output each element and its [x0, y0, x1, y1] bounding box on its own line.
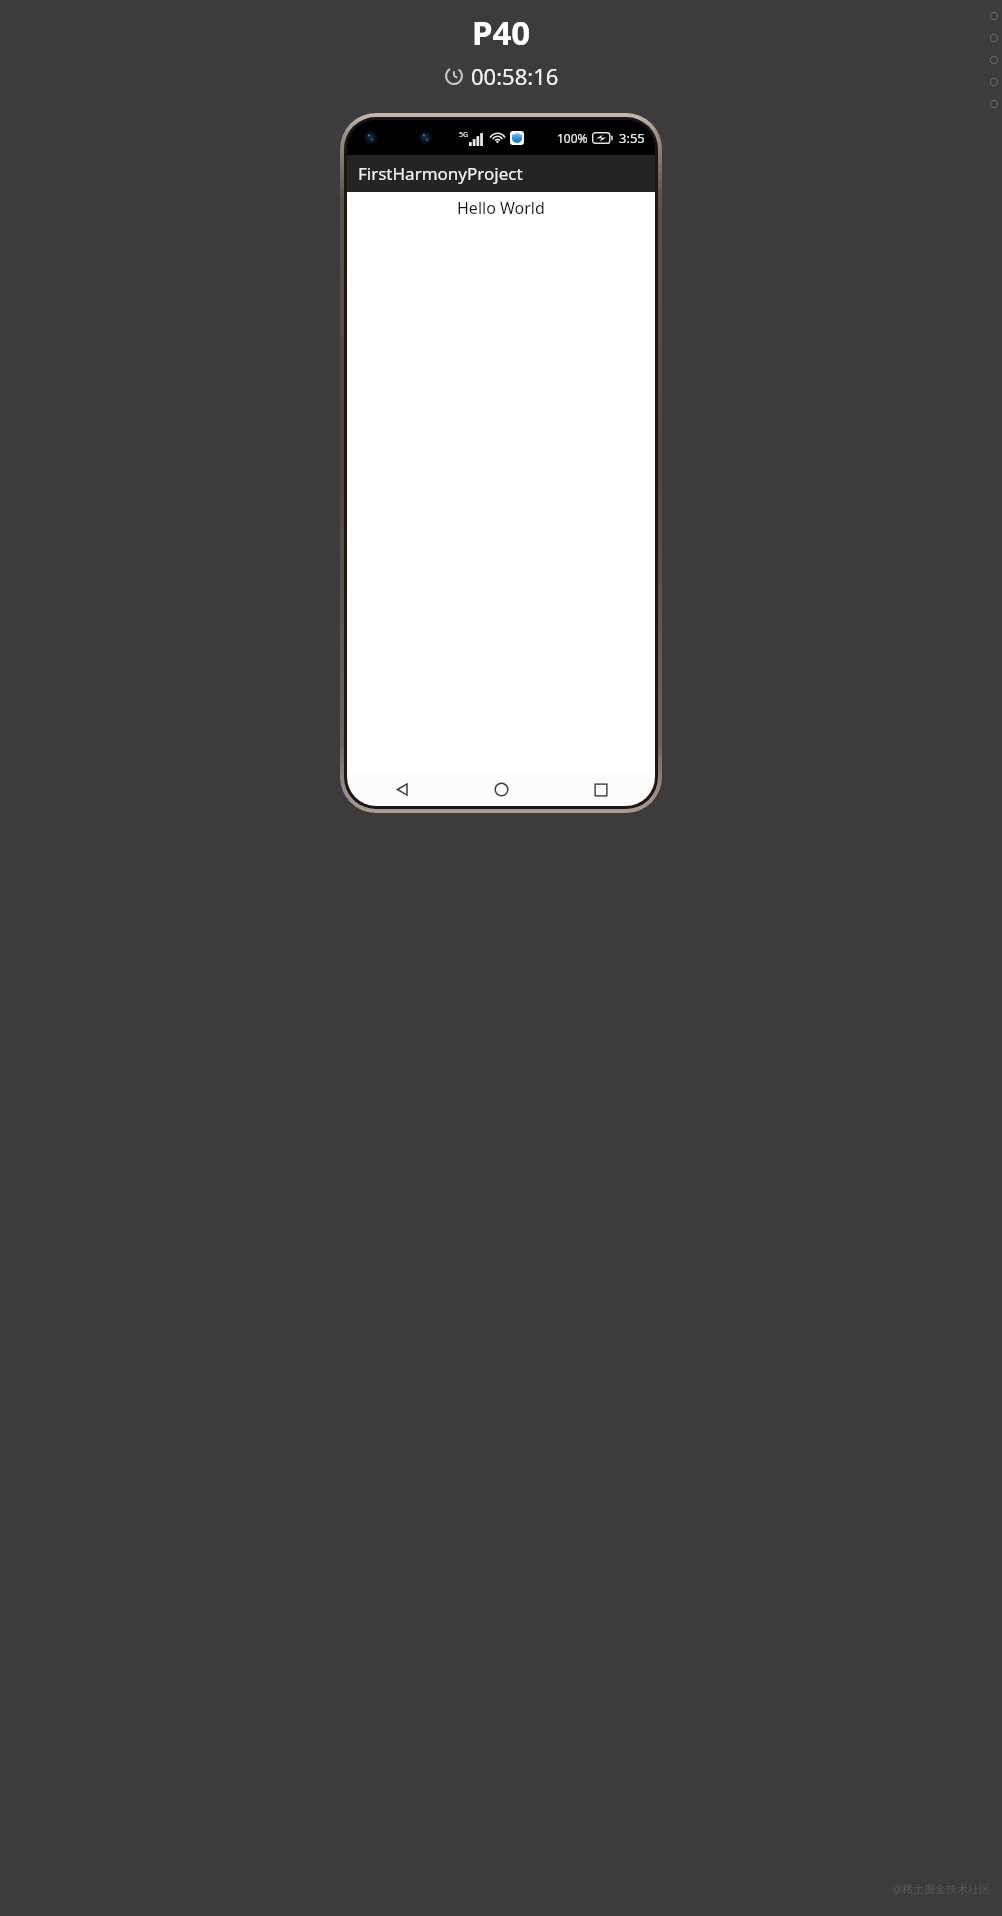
button[interactable]: Tool 5: [986, 96, 1001, 111]
button[interactable]: Home: [456, 773, 546, 806]
button[interactable]: Recent apps: [556, 773, 646, 806]
staticText: FirstHarmonyProject: [358, 162, 523, 185]
button[interactable]: Back: [357, 773, 447, 806]
button[interactable]: Tool 4: [986, 74, 1001, 89]
button[interactable]: Tool 2: [986, 30, 1001, 45]
staticText: 100%: [557, 130, 588, 146]
staticText: P40: [472, 10, 531, 55]
staticText: 00:58:16: [471, 61, 559, 91]
staticText: 3:55: [619, 129, 645, 147]
staticText: Hello World: [457, 197, 545, 219]
staticText: 5G: [459, 130, 469, 140]
button[interactable]: FirstHarmonyProject: [347, 155, 655, 192]
button[interactable]: Tool 3: [986, 52, 1001, 67]
staticText: @稀土掘金技术社区: [892, 1881, 990, 1896]
button[interactable]: Tool 1: [986, 8, 1001, 23]
